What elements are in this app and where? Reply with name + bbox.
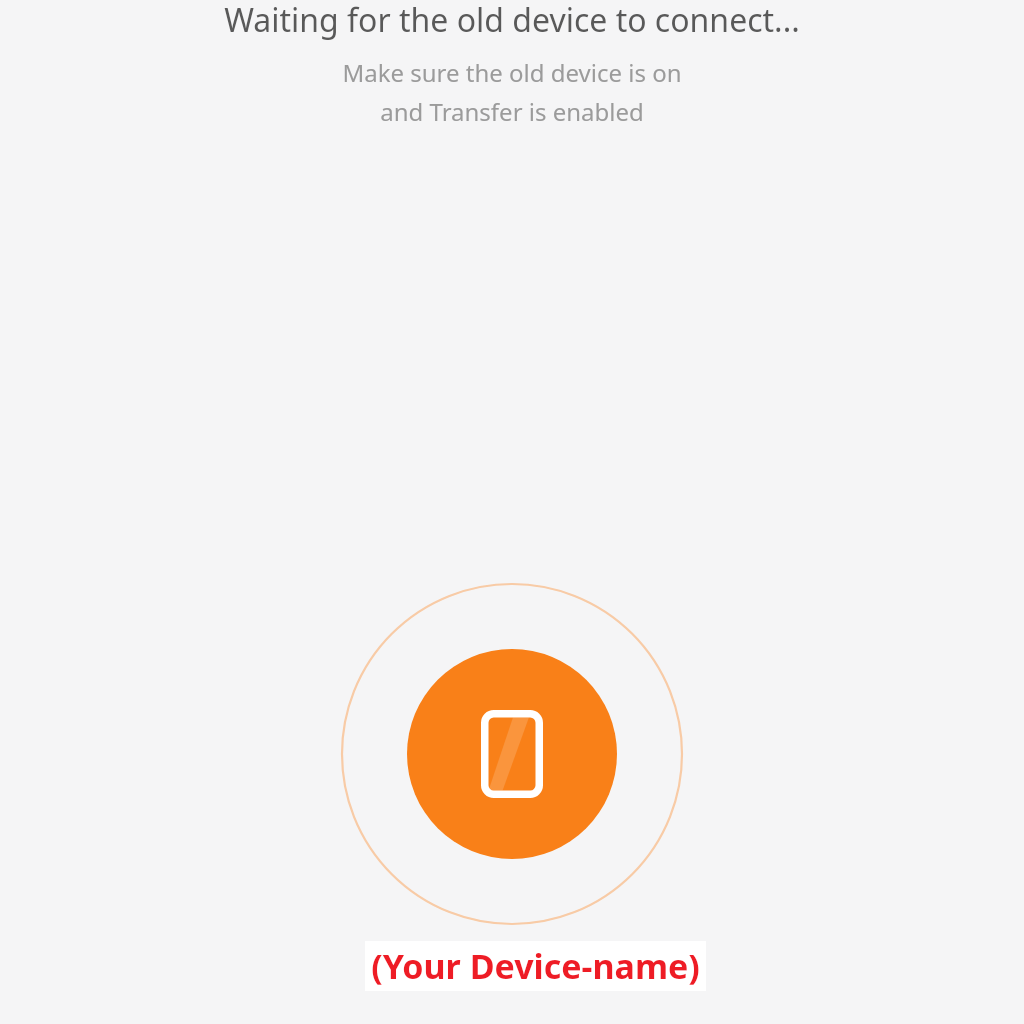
staticText: Make sure the old device is on and Trans…: [342, 56, 682, 128]
staticText: (Your Device-name): [371, 943, 700, 989]
staticText: Waiting for the old device to connect...: [224, 0, 800, 42]
button[interactable]: This device: [336, 578, 688, 930]
button[interactable]: (Your Device-name): [371, 943, 700, 989]
